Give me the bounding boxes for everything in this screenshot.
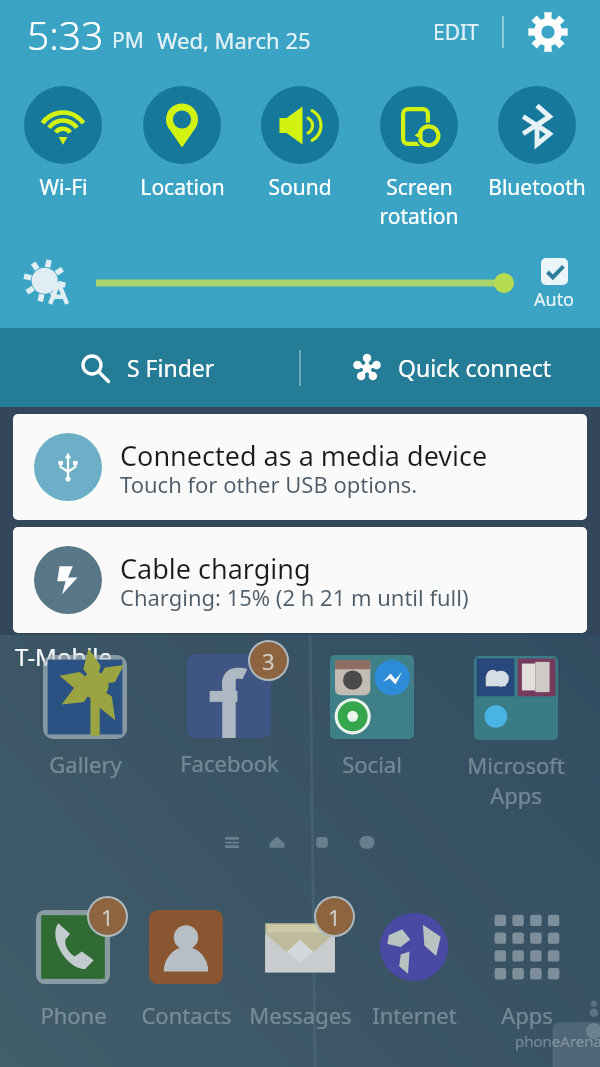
button[interactable]: Sound: [241, 86, 359, 202]
button[interactable]: EDIT: [421, 8, 491, 57]
staticText: Cable charging: [120, 550, 311, 587]
staticText: Contacts: [141, 1000, 232, 1030]
staticText: Bluetooth: [488, 173, 586, 202]
staticText: Wed, March 25: [157, 25, 311, 55]
button[interactable]: Nav 2: [311, 831, 333, 853]
staticText: Screen: [386, 173, 453, 202]
staticText: Auto: [534, 287, 575, 312]
staticText: Apps: [501, 1000, 553, 1030]
button[interactable]: Settings: [524, 8, 572, 56]
staticText: Location: [140, 173, 225, 202]
staticText: rotation: [379, 202, 459, 231]
staticText: Apps: [490, 780, 542, 810]
button[interactable]: Microsoft: [456, 656, 576, 810]
button[interactable]: Internet: [354, 910, 474, 1030]
button[interactable]: Nav 0: [221, 831, 243, 853]
staticText: T-Mobile: [15, 640, 113, 673]
staticText: Connected as a media device: [120, 437, 488, 474]
button[interactable]: Auto brightness: [18, 254, 76, 312]
staticText: Phone: [40, 1000, 107, 1030]
staticText: Messages: [249, 1000, 352, 1030]
staticText: 5:33: [27, 8, 104, 61]
button[interactable]: Nav 1: [266, 831, 288, 853]
button[interactable]: Nav 3: [356, 831, 378, 853]
staticText: Social: [342, 749, 402, 779]
button[interactable]: Cable charging: [13, 527, 587, 633]
staticText: Microsoft: [467, 750, 565, 780]
button[interactable]: Gallery: [25, 655, 145, 779]
staticText: Internet: [372, 1000, 457, 1030]
button[interactable]: 1: [240, 910, 360, 1030]
button[interactable]: Social: [312, 655, 432, 779]
button[interactable]: Quick connect: [350, 328, 552, 407]
staticText: Quick connect: [398, 352, 552, 383]
button[interactable]: Brightness slider: [90, 263, 514, 303]
staticText: phoneArena: [515, 1031, 600, 1051]
staticText: S Finder: [127, 352, 215, 383]
button[interactable]: Location: [123, 86, 241, 202]
staticText: Sound: [268, 173, 332, 202]
button[interactable]: Wi-Fi: [4, 86, 122, 202]
staticText: 1: [328, 902, 341, 932]
button[interactable]: Apps: [467, 910, 587, 1030]
button[interactable]: 1: [13, 910, 133, 1030]
button[interactable]: Connected as a media device: [13, 414, 587, 520]
button[interactable]: 3: [169, 654, 289, 778]
button[interactable]: Bluetooth: [478, 86, 596, 202]
staticText: Charging: 15% (2 h 21 m until full): [120, 582, 469, 612]
staticText: 1: [101, 902, 114, 932]
staticText: Wi-Fi: [39, 173, 88, 202]
button[interactable]: Auto: [527, 258, 581, 312]
staticText: 3: [262, 646, 275, 676]
button[interactable]: Contacts: [126, 910, 246, 1030]
staticText: EDIT: [433, 18, 479, 47]
staticText: PM: [112, 26, 144, 55]
staticText: Facebook: [180, 748, 279, 778]
staticText: Gallery: [49, 749, 122, 779]
staticText: Touch for other USB options.: [120, 469, 418, 499]
button[interactable]: Screen: [360, 86, 478, 231]
button[interactable]: S Finder: [80, 328, 215, 407]
